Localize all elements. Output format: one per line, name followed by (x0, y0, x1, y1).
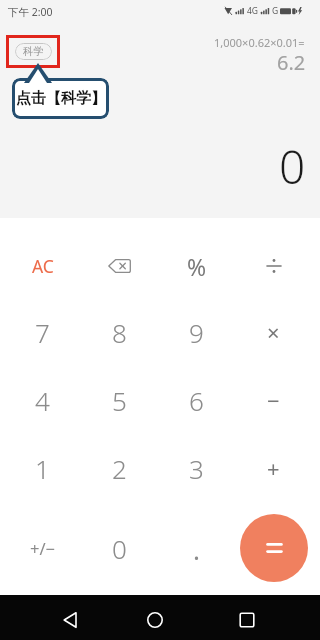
button[interactable] (50, 595, 90, 640)
button[interactable]: 8 (81, 299, 158, 365)
staticText: 1 (35, 451, 50, 486)
button[interactable]: 6 (158, 365, 235, 435)
staticText: 2 (112, 451, 127, 486)
staticText: 0 (112, 531, 127, 566)
staticText: − (267, 385, 280, 415)
staticText: G (272, 5, 279, 17)
staticText: 6.2 (277, 49, 306, 76)
button[interactable]: 1 (4, 435, 81, 501)
button[interactable]: + (235, 435, 312, 501)
staticText: + (267, 453, 280, 483)
button[interactable] (240, 514, 308, 582)
staticText: 0 (279, 135, 306, 198)
staticText: 3 (189, 451, 204, 486)
button[interactable]: × (235, 299, 312, 365)
staticText: % (187, 251, 207, 282)
button[interactable]: 2 (81, 435, 158, 501)
button[interactable]: 7 (4, 299, 81, 365)
button[interactable]: % (158, 233, 235, 299)
button[interactable]: 科学 (15, 43, 52, 60)
button[interactable]: AC (4, 233, 81, 299)
button[interactable]: 4 (4, 365, 81, 435)
button[interactable]: 9 (158, 299, 235, 365)
button[interactable] (81, 233, 158, 299)
button[interactable]: 3 (158, 435, 235, 501)
staticText: +/− (30, 537, 56, 559)
staticText: . (193, 532, 200, 567)
staticText: 6 (189, 383, 204, 418)
staticText: 5 (112, 383, 127, 418)
button[interactable] (135, 595, 175, 640)
button[interactable]: 5 (81, 365, 158, 435)
button[interactable]: +/− (4, 501, 81, 595)
button[interactable]: 0 (81, 501, 158, 595)
staticText: 4G (247, 5, 259, 17)
button[interactable] (227, 595, 267, 640)
staticText: AC (32, 254, 54, 278)
button[interactable]: . (158, 501, 235, 595)
button[interactable] (235, 233, 312, 299)
staticText: 4 (35, 383, 50, 418)
staticText: 1,000×0.62×0.01= (214, 35, 305, 50)
staticText: 9 (189, 315, 204, 350)
staticText: 点击【科学】 (16, 89, 106, 108)
staticText: 8 (112, 315, 127, 350)
staticText: 下午 2:00 (8, 5, 53, 19)
staticText: 科学 (23, 45, 44, 58)
staticText: × (267, 317, 280, 347)
button[interactable] (235, 501, 312, 595)
button[interactable]: − (235, 365, 312, 435)
staticText: 7 (35, 315, 50, 350)
